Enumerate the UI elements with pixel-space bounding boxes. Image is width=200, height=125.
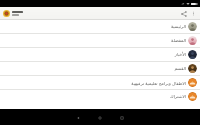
staticText: الرئيسية [170, 24, 186, 29]
staticText: الاشتراك [170, 94, 186, 99]
staticText: الأخبار [174, 52, 186, 57]
button[interactable]: Home [89, 111, 111, 124]
staticText: المفضلة [171, 38, 186, 43]
button[interactable]: Recent apps [111, 111, 133, 124]
button[interactable]: المفضلة [0, 34, 200, 47]
button[interactable]: Share [178, 8, 189, 19]
button[interactable]: More options [189, 9, 198, 18]
button[interactable] [3, 10, 23, 17]
button[interactable]: الاطفال وبرامج تعليمية ترفيهية [0, 76, 200, 89]
button[interactable]: القسم [0, 62, 200, 75]
button[interactable]: الاشتراك [0, 90, 200, 103]
staticText: الاطفال وبرامج تعليمية ترفيهية [131, 80, 186, 86]
button[interactable]: الرئيسية [0, 20, 200, 33]
staticText: القسم [174, 66, 186, 71]
button[interactable]: الأخبار [0, 48, 200, 61]
button[interactable]: Back [67, 111, 89, 124]
